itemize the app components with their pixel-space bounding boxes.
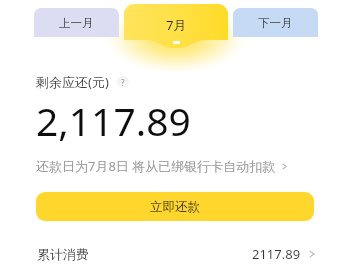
button[interactable]: 累计消费 (0, 243, 349, 265)
staticText: 7月 (166, 16, 187, 34)
staticText: 2,117.89 (36, 94, 191, 147)
button[interactable]: 上一月 (34, 8, 119, 37)
staticText: 立即还款 (150, 199, 200, 215)
staticText: 2117.89 (252, 245, 301, 263)
button[interactable]: 还款日为7月8日 将从已绑银行卡自动扣款 (36, 157, 289, 175)
button[interactable]: 7月 (124, 4, 228, 48)
staticText: 剩余应还(元) (36, 73, 109, 91)
staticText: 还款日为7月8日 将从已绑银行卡自动扣款 (36, 157, 276, 175)
staticText: ? (121, 77, 125, 88)
button[interactable]: 帮助 (117, 76, 129, 88)
button[interactable]: 下一月 (233, 8, 318, 37)
staticText: 下一月 (258, 16, 293, 30)
button[interactable]: 立即还款 (36, 192, 314, 221)
staticText: 累计消费 (37, 246, 89, 262)
staticText: 上一月 (59, 16, 94, 30)
